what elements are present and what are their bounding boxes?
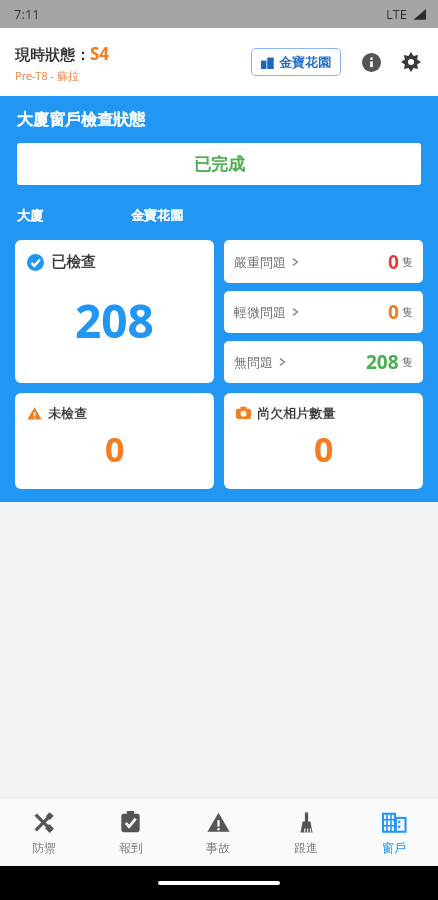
button[interactable]: 防禦 <box>0 799 87 866</box>
staticText: 隻 <box>402 255 413 269</box>
button[interactable]: 金寶花園 <box>251 48 341 76</box>
staticText: 208 <box>366 349 399 375</box>
staticText: 金寶花園 <box>131 207 183 223</box>
staticText: 大廈窗戶檢查狀態 <box>17 110 145 130</box>
staticText: 防禦 <box>32 840 56 855</box>
button[interactable]: 已完成 <box>17 143 421 185</box>
staticText: 事故 <box>206 840 230 855</box>
staticText: 現時狀態： <box>15 46 90 65</box>
staticText: 無問題 <box>234 354 273 370</box>
staticText: 大廈 <box>17 207 43 223</box>
staticText: 跟進 <box>294 840 318 855</box>
staticText: 隻 <box>402 305 413 319</box>
button[interactable]: 輕微問題 <box>224 291 423 333</box>
staticText: 金寶花園 <box>279 54 331 70</box>
staticText: 窗戶 <box>382 840 406 855</box>
button[interactable]: 無問題 <box>224 341 423 383</box>
staticText: 已完成 <box>194 154 245 175</box>
staticText: S4 <box>90 42 110 65</box>
staticText: 未檢查 <box>48 405 87 421</box>
button[interactable]: 報到 <box>87 799 174 866</box>
button[interactable]: 跟進 <box>262 799 350 866</box>
button[interactable]: 尚欠相片數量 <box>224 393 423 489</box>
button[interactable]: 未檢查 <box>15 393 214 489</box>
staticText: Pre-T8 - 蘇拉 <box>15 68 79 83</box>
button[interactable]: 已檢查 <box>15 240 214 383</box>
button[interactable]: 事故 <box>174 799 262 866</box>
staticText: 已檢查 <box>51 253 96 272</box>
staticText: 0 <box>388 249 399 275</box>
staticText: LTE <box>386 5 408 23</box>
staticText: 7:11 <box>14 5 40 23</box>
staticText: 尚欠相片數量 <box>257 405 335 421</box>
staticText: 208 <box>75 289 154 352</box>
button[interactable]: 窗戶 <box>350 799 438 866</box>
button[interactable]: 嚴重問題 <box>224 240 423 283</box>
staticText: 輕微問題 <box>234 304 286 320</box>
staticText: 嚴重問題 <box>234 254 286 270</box>
staticText: 0 <box>105 426 125 472</box>
button[interactable]: Info <box>354 45 388 79</box>
staticText: 報到 <box>119 840 143 855</box>
staticText: 隻 <box>402 355 413 369</box>
staticText: 0 <box>388 299 399 325</box>
staticText: 0 <box>314 426 334 472</box>
button[interactable]: Settings <box>394 45 428 79</box>
